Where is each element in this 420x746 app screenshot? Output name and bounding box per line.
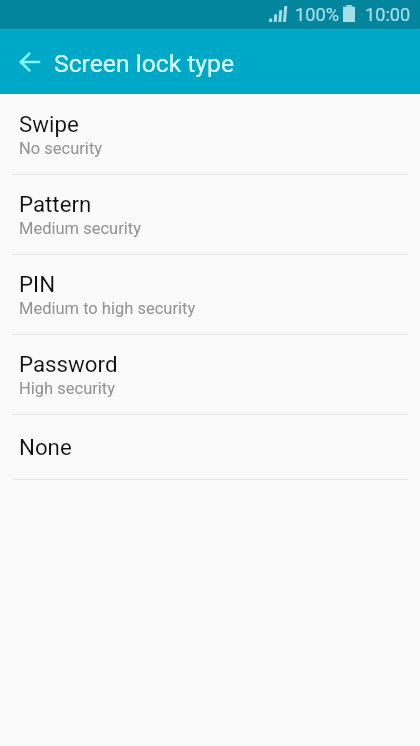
staticText: Screen lock type (54, 49, 235, 78)
button[interactable]: Pattern (0, 174, 420, 254)
button[interactable]: Password (0, 334, 420, 414)
staticText: Password (19, 351, 118, 377)
button[interactable]: None (0, 414, 420, 480)
staticText: PIN (19, 271, 56, 297)
staticText: High security (19, 379, 116, 398)
button[interactable]: Swipe (0, 94, 420, 174)
button[interactable]: Navigate up (6, 38, 54, 86)
staticText: 10:00 (365, 4, 411, 25)
staticText: No security (19, 139, 103, 158)
staticText: Medium security (19, 219, 141, 238)
staticText: None (19, 434, 72, 460)
staticText: Swipe (19, 111, 79, 137)
staticText: 100% (295, 4, 339, 25)
staticText: Pattern (19, 191, 92, 217)
staticText: Medium to high security (19, 299, 196, 318)
button[interactable]: PIN (0, 254, 420, 334)
